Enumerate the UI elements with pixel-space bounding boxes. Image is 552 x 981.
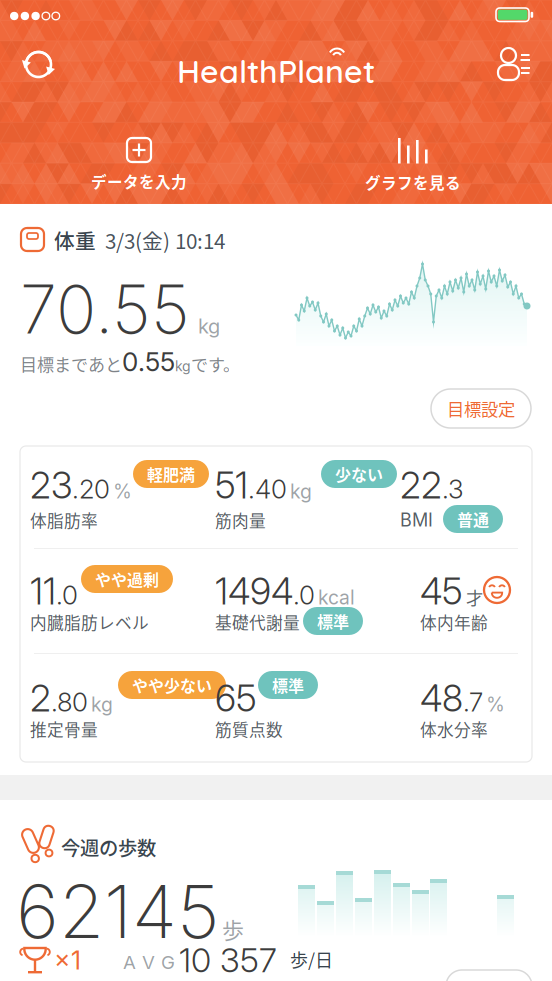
staticText: V <box>142 951 155 974</box>
staticText: 推定骨量 <box>30 717 98 741</box>
staticText: 22 <box>400 463 442 507</box>
staticText: .7 <box>463 686 483 718</box>
staticText: 体内年齢 <box>420 610 488 634</box>
staticText: % <box>113 480 132 503</box>
staticText: 歩 <box>222 913 244 945</box>
staticText: 目標まであと <box>20 351 122 376</box>
staticText: .20 <box>72 473 110 505</box>
staticText: 基礎代謝量 <box>215 610 300 634</box>
staticText: 2 <box>30 676 51 720</box>
staticText: .40 <box>248 473 287 505</box>
staticText: 普通 <box>457 507 489 531</box>
staticText: kg <box>175 358 191 374</box>
staticText: .0 <box>293 579 315 611</box>
staticText: BMI <box>400 509 433 531</box>
staticText: 体脂肪率 <box>30 508 98 532</box>
button[interactable]: グラフを見る <box>333 138 493 194</box>
staticText: kg <box>91 693 113 716</box>
button[interactable] <box>21 47 55 81</box>
staticText: 今週の歩数 <box>61 833 156 861</box>
staticText: 3/3(金) 10:14 <box>105 225 225 255</box>
staticText: ×1 <box>54 945 81 976</box>
staticText: 体水分率 <box>420 717 488 741</box>
staticText: 標準 <box>317 609 349 633</box>
button[interactable] <box>446 970 532 981</box>
staticText: % <box>486 693 505 716</box>
staticText: 10 357 <box>179 940 277 980</box>
staticText: 才 <box>466 584 483 609</box>
staticText: 23 <box>30 463 72 507</box>
staticText: 45 <box>420 569 463 613</box>
staticText: 0.55 <box>122 346 175 377</box>
staticText: 62145 <box>16 867 219 956</box>
staticText: .3 <box>442 473 464 505</box>
staticText: .0 <box>56 579 78 611</box>
staticText: 目標設定 <box>447 396 515 421</box>
staticText: 1494 <box>215 569 293 613</box>
staticText: 65 <box>215 676 257 720</box>
staticText: グラフを見る <box>365 171 461 194</box>
staticText: kg <box>290 480 312 503</box>
staticText: 48 <box>420 676 463 720</box>
staticText: 11 <box>30 569 56 613</box>
staticText: 筋肉量 <box>215 508 266 532</box>
staticText: HealthPlanet <box>177 51 375 91</box>
staticText: 51 <box>215 463 248 507</box>
staticText: kg <box>198 314 220 338</box>
button[interactable] <box>498 48 530 80</box>
staticText: やや過剰 <box>95 567 159 591</box>
staticText: 内臓脂肪レベル <box>30 610 149 634</box>
staticText: 筋質点数 <box>215 717 283 741</box>
button[interactable]: 目標設定 <box>431 389 531 428</box>
staticText: kcal <box>318 586 355 609</box>
staticText: 少ない <box>335 462 383 486</box>
staticText: 軽肥満 <box>147 462 195 486</box>
button[interactable]: データを入力 <box>59 138 219 193</box>
staticText: データを入力 <box>91 170 187 193</box>
staticText: 歩/日 <box>290 946 333 972</box>
staticText: 70.55 <box>20 269 190 350</box>
staticText: です。 <box>191 351 240 376</box>
staticText: G <box>161 951 175 974</box>
staticText: やや少ない <box>132 673 212 697</box>
staticText: .80 <box>51 686 88 718</box>
staticText: 体重 <box>54 225 96 255</box>
staticText: 標準 <box>272 673 304 697</box>
staticText: A <box>123 951 136 974</box>
